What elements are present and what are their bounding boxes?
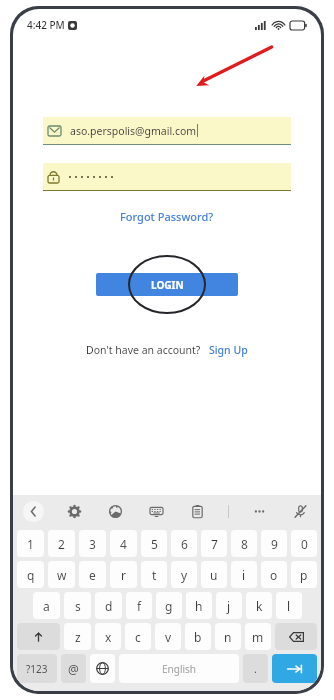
staticText: b [194, 629, 202, 645]
staticText: 4:42 PM [27, 18, 65, 32]
button[interactable]: f [126, 592, 152, 619]
staticText: 2 [58, 536, 65, 552]
button[interactable]: Sign Up [209, 343, 248, 357]
staticText: 4 [120, 536, 127, 552]
button[interactable]: @ [61, 654, 86, 683]
staticText: q [27, 567, 35, 583]
button[interactable]: h [186, 592, 212, 619]
staticText: 9 [271, 536, 278, 552]
button[interactable]: g [156, 592, 182, 619]
staticText: j [227, 598, 231, 614]
button[interactable]: 2 [48, 530, 75, 557]
button[interactable]: i [231, 561, 257, 588]
staticText: w [57, 567, 67, 583]
button[interactable]: 3 [79, 530, 106, 557]
button[interactable]: Enter [272, 654, 317, 683]
staticText: 1 [27, 536, 34, 552]
staticText: ?123 [26, 662, 48, 676]
staticText: 5 [151, 536, 158, 552]
staticText: 6 [181, 536, 188, 552]
staticText: y [181, 567, 188, 583]
button[interactable]: English [119, 654, 239, 683]
button[interactable]: 5 [141, 530, 167, 557]
button[interactable]: 1 [17, 530, 44, 557]
button[interactable]: d [95, 592, 122, 619]
staticText: aso.perspolis@gmail.com [70, 124, 197, 138]
staticText: n [224, 629, 232, 645]
staticText: h [195, 598, 203, 614]
button[interactable]: s [64, 592, 91, 619]
button[interactable]: aso.perspolis@gmail.com [43, 117, 291, 145]
button[interactable]: Keyboard layout [146, 501, 167, 522]
button[interactable]: b [185, 623, 211, 650]
button[interactable]: More options [249, 501, 270, 522]
button[interactable]: ?123 [17, 654, 57, 683]
staticText: . [254, 661, 257, 676]
button[interactable]: Forgot Password? [116, 205, 218, 228]
staticText: English [162, 662, 197, 676]
button[interactable]: v [155, 623, 181, 650]
button[interactable]: z [64, 623, 91, 650]
button[interactable]: Voice input off [290, 501, 311, 522]
staticText: a [43, 598, 50, 614]
staticText: u [210, 567, 218, 583]
button[interactable]: k [246, 592, 272, 619]
button[interactable]: a [33, 592, 60, 619]
button[interactable]: n [215, 623, 241, 650]
button[interactable]: Shift [17, 623, 60, 650]
button[interactable]: x [95, 623, 121, 650]
staticText: f [137, 598, 142, 614]
staticText: v [165, 629, 172, 645]
button[interactable]: c [125, 623, 151, 650]
staticText: i [242, 567, 246, 583]
staticText: r [121, 567, 126, 583]
staticText: LOGIN [151, 278, 184, 292]
button[interactable]: Backspace [275, 623, 317, 650]
staticText: e [89, 567, 96, 583]
staticText: o [270, 567, 278, 583]
staticText: Don't have an account? [86, 343, 201, 357]
staticText: k [256, 598, 263, 614]
button[interactable]: 9 [261, 530, 287, 557]
staticText: 3 [89, 536, 96, 552]
staticText: x [105, 629, 112, 645]
staticText: @ [68, 661, 79, 677]
button[interactable]: . [243, 654, 268, 683]
button[interactable]: 7 [201, 530, 227, 557]
button[interactable]: e [79, 561, 106, 588]
button[interactable]: Back [23, 501, 44, 522]
button[interactable]: 0 [291, 530, 317, 557]
button[interactable]: 8 [231, 530, 257, 557]
button[interactable]: j [216, 592, 242, 619]
button[interactable]: u [201, 561, 227, 588]
button[interactable]: l [276, 592, 302, 619]
button[interactable]: o [261, 561, 287, 588]
button[interactable]: Clipboard [187, 501, 208, 522]
button[interactable]: r [110, 561, 137, 588]
staticText: 7 [211, 536, 218, 552]
button[interactable]: 6 [171, 530, 197, 557]
staticText: p [300, 567, 308, 583]
button[interactable]: LOGIN [96, 273, 238, 296]
button[interactable]: y [171, 561, 197, 588]
button[interactable]: 4 [110, 530, 137, 557]
button[interactable]: t [141, 561, 167, 588]
staticText: 0 [301, 536, 308, 552]
button[interactable]: m [245, 623, 271, 650]
button[interactable]: q [17, 561, 44, 588]
staticText: m [252, 629, 264, 645]
button[interactable]: Change language [90, 654, 115, 683]
staticText: d [105, 598, 113, 614]
button[interactable]: Settings [64, 501, 85, 522]
staticText: 8 [241, 536, 248, 552]
button[interactable] [43, 163, 291, 191]
staticText: z [75, 629, 81, 645]
staticText: g [165, 598, 173, 614]
button[interactable]: Theme [105, 501, 126, 522]
button[interactable]: w [48, 561, 75, 588]
button[interactable]: p [291, 561, 317, 588]
staticText: c [135, 629, 141, 645]
staticText: s [75, 598, 81, 614]
staticText: l [287, 598, 291, 614]
staticText: t [152, 567, 157, 583]
